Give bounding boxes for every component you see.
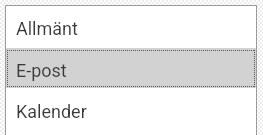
staticText: Allmänt (16, 18, 78, 39)
staticText: Kalender (16, 101, 87, 122)
button[interactable]: Kalender (5, 88, 257, 131)
staticText: E-post (16, 60, 67, 81)
button[interactable]: Allmänt (5, 5, 257, 48)
button[interactable]: E-post (5, 48, 257, 88)
